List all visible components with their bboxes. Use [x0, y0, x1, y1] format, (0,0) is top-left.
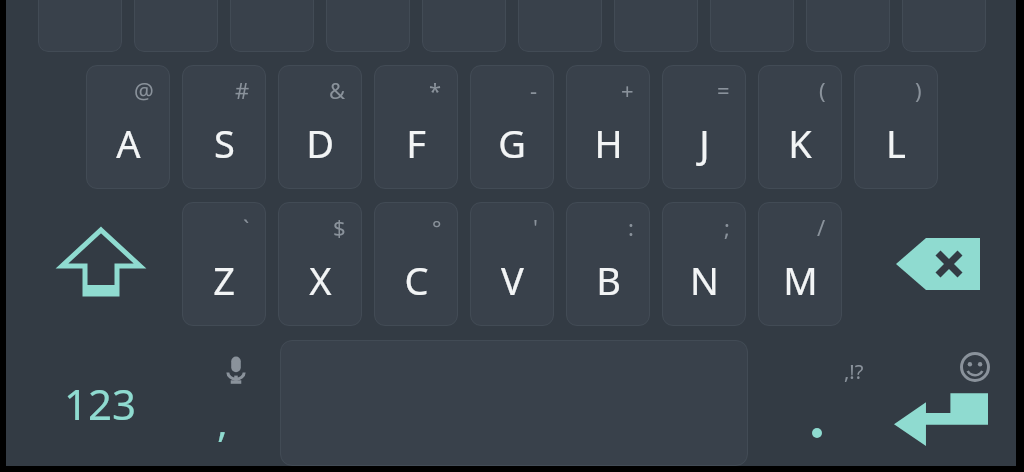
- button[interactable]: /: [758, 202, 842, 326]
- staticText: S: [214, 117, 235, 169]
- button[interactable]: ): [854, 65, 938, 189]
- button[interactable]: #: [182, 65, 266, 189]
- button[interactable]: ,!?: [768, 340, 878, 466]
- button[interactable]: @: [86, 65, 170, 189]
- staticText: M: [783, 254, 818, 306]
- button[interactable]: &: [278, 65, 362, 189]
- staticText: -: [530, 75, 538, 105]
- staticText: $: [333, 212, 346, 242]
- button[interactable]: -: [470, 65, 554, 189]
- staticText: V: [501, 254, 524, 306]
- staticText: ,: [217, 394, 228, 448]
- staticText: B: [596, 254, 621, 306]
- staticText: J: [699, 117, 710, 169]
- staticText: =: [717, 75, 730, 105]
- button[interactable]: °: [374, 202, 458, 326]
- staticText: &: [329, 75, 346, 105]
- button[interactable]: +: [566, 65, 650, 189]
- staticText: #: [235, 75, 250, 105]
- staticText: `: [243, 212, 250, 242]
- staticText: ): [915, 75, 922, 105]
- button[interactable]: ;: [662, 202, 746, 326]
- button[interactable]: ': [470, 202, 554, 326]
- button[interactable]: `: [182, 202, 266, 326]
- button[interactable]: Backspace: [878, 202, 998, 326]
- button[interactable]: :: [566, 202, 650, 326]
- staticText: ;: [724, 212, 730, 242]
- staticText: ': [533, 212, 538, 242]
- button[interactable]: =: [662, 65, 746, 189]
- staticText: K: [788, 117, 812, 169]
- staticText: H: [594, 117, 623, 169]
- button[interactable]: (: [758, 65, 842, 189]
- staticText: L: [886, 117, 906, 169]
- button[interactable]: Enter: [882, 340, 1008, 466]
- staticText: X: [309, 254, 332, 306]
- staticText: @: [134, 75, 154, 105]
- staticText: G: [498, 117, 526, 169]
- staticText: N: [690, 254, 719, 306]
- staticText: *: [429, 75, 442, 105]
- staticText: Z: [213, 254, 235, 306]
- staticText: /: [817, 212, 826, 242]
- staticText: ,!?: [844, 358, 864, 385]
- button[interactable]: $: [278, 202, 362, 326]
- staticText: C: [404, 254, 429, 306]
- staticText: +: [621, 75, 634, 105]
- button[interactable]: 123: [30, 340, 170, 466]
- button[interactable]: *: [374, 65, 458, 189]
- staticText: F: [406, 117, 426, 169]
- staticText: A: [116, 117, 141, 169]
- staticText: D: [306, 117, 334, 169]
- staticText: °: [432, 212, 442, 242]
- staticText: :: [628, 212, 634, 242]
- button[interactable]: ,: [178, 340, 274, 466]
- button[interactable]: Shift: [46, 202, 156, 326]
- staticText: 123: [64, 375, 137, 432]
- staticText: (: [819, 75, 826, 105]
